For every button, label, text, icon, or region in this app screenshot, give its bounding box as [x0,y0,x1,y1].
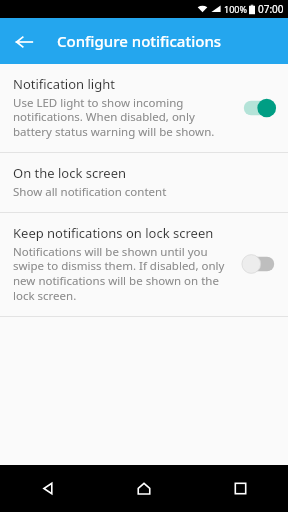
button[interactable]: Navigate up [7,25,40,58]
button[interactable]: Switch on [239,95,279,121]
button[interactable]: Notification light [0,64,288,152]
staticText: Use LED light to show incoming notificat… [13,95,231,140]
button[interactable]: Keep notifications on lock screen [0,213,288,316]
staticText: 100% [224,3,247,15]
staticText: Show all notification content [13,184,167,200]
button[interactable]: Recent apps [192,465,288,512]
staticText: On the lock screen [13,164,127,182]
button[interactable]: Switch off [239,251,279,277]
staticText: Notification light [13,75,115,93]
button[interactable]: On the lock screen [0,153,288,212]
staticText: Keep notifications on lock screen [13,224,214,242]
button[interactable]: Back [0,465,96,512]
staticText: Configure notifications [57,31,222,51]
staticText: 07:00 [258,2,284,16]
staticText: Notifications will be shown until you sw… [13,244,231,304]
button[interactable]: Home [96,465,192,512]
